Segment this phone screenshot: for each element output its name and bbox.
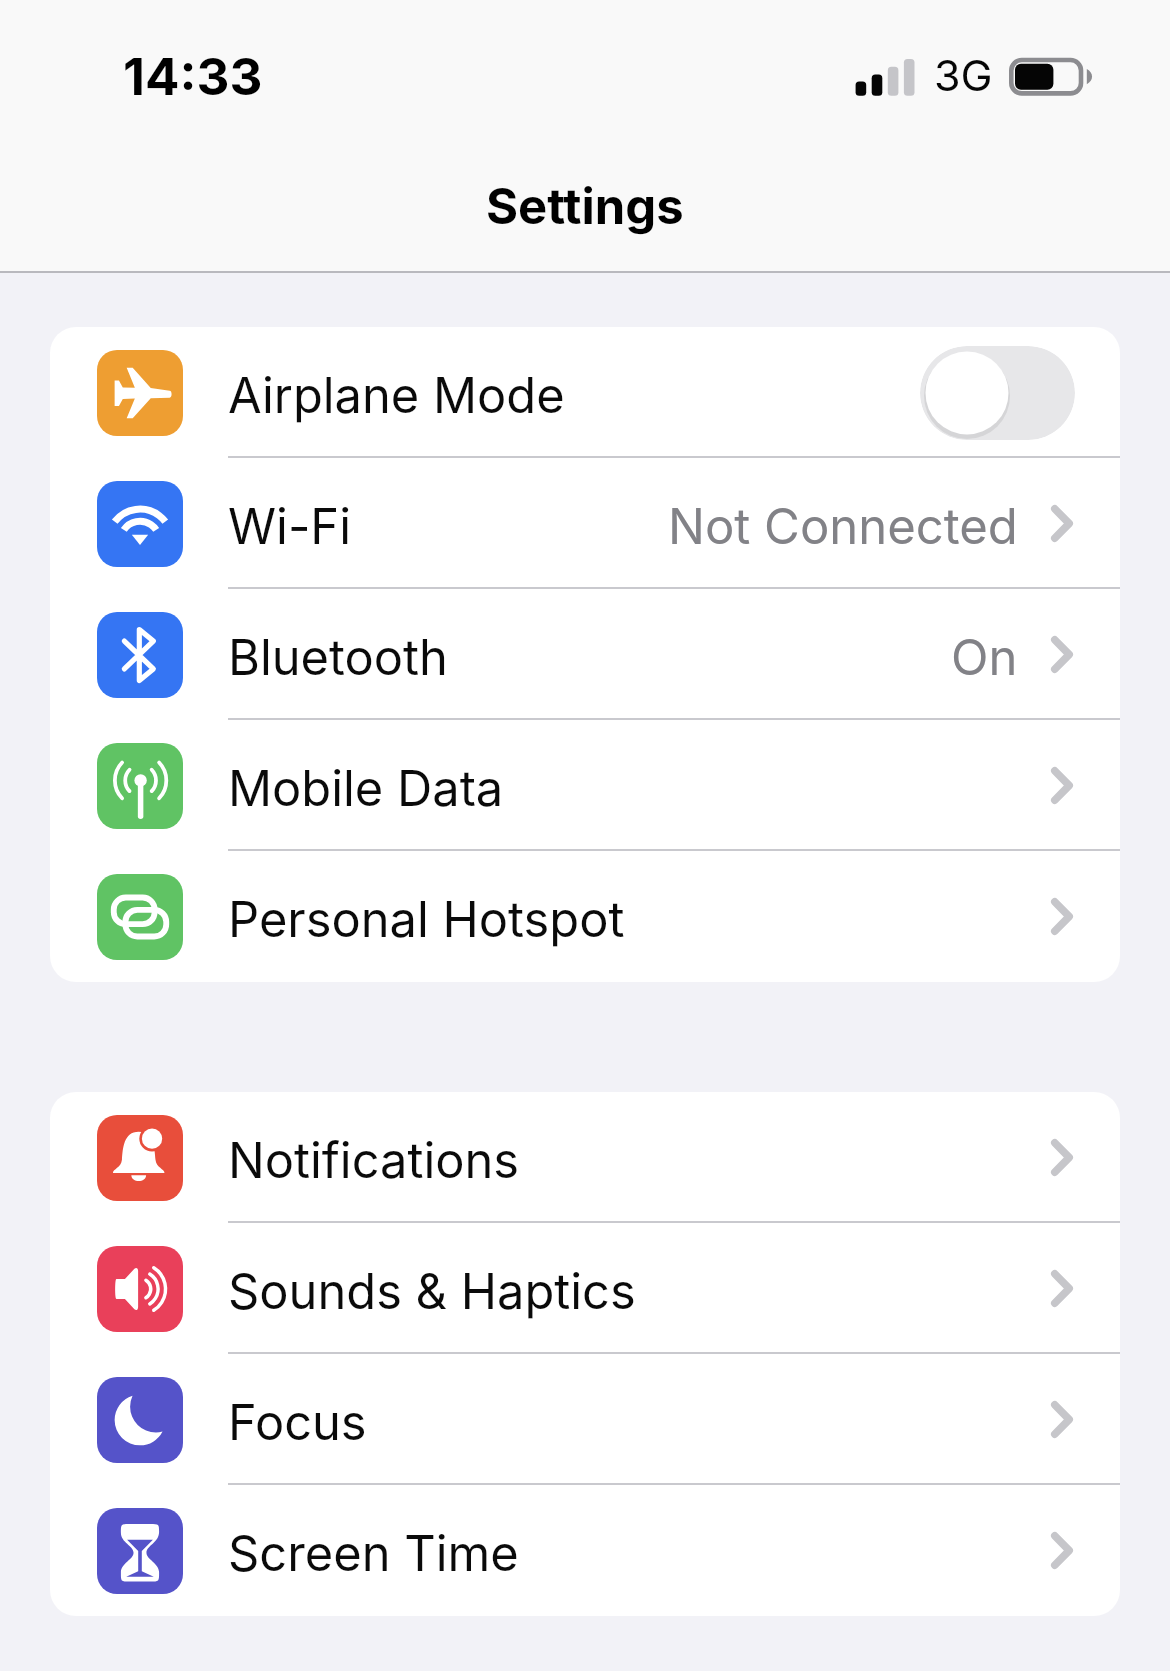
staticText: 14:33: [123, 46, 263, 108]
button[interactable]: Screen Time: [50, 1485, 1120, 1616]
staticText: Bluetooth: [228, 628, 448, 687]
staticText: Not Connected: [668, 497, 1018, 556]
staticText: 3G: [934, 49, 993, 101]
button[interactable]: Focus: [50, 1354, 1120, 1485]
staticText: Mobile Data: [228, 759, 504, 818]
button[interactable]: Mobile Data: [50, 720, 1120, 851]
button[interactable]: Airplane Mode toggle, off: [920, 346, 1075, 440]
staticText: Notifications: [228, 1131, 520, 1190]
button[interactable]: Sounds & Haptics: [50, 1223, 1120, 1354]
staticText: Focus: [228, 1393, 367, 1452]
staticText: Wi-Fi: [228, 497, 351, 556]
staticText: Airplane Mode: [228, 366, 565, 425]
staticText: Personal Hotspot: [228, 890, 625, 949]
button[interactable]: Notifications: [50, 1092, 1120, 1223]
button[interactable]: Wi-Fi: [50, 458, 1120, 589]
button[interactable]: Airplane Mode: [50, 327, 1120, 458]
staticText: Screen Time: [228, 1524, 519, 1583]
button[interactable]: Personal Hotspot: [50, 851, 1120, 982]
staticText: On: [951, 628, 1018, 687]
staticText: Sounds & Haptics: [228, 1262, 636, 1321]
button[interactable]: Bluetooth: [50, 589, 1120, 720]
staticText: Settings: [486, 177, 684, 236]
